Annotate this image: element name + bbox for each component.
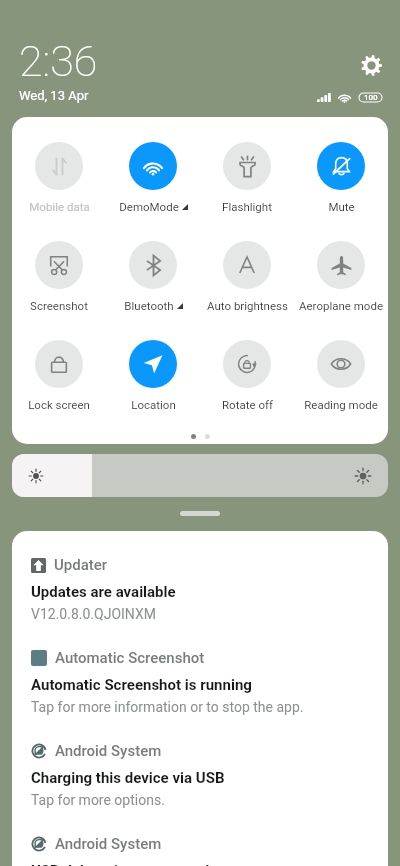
staticText: Updates are available	[31, 583, 176, 601]
button[interactable]: Aeroplane mode	[294, 241, 388, 312]
staticText: Aeroplane mode	[299, 299, 383, 312]
button[interactable]: Brightness	[12, 454, 388, 497]
button[interactable]: Bluetooth	[106, 241, 200, 312]
staticText: 100	[364, 93, 378, 102]
staticText: Auto brightness	[207, 299, 288, 312]
button[interactable]: Flashlight	[200, 142, 294, 213]
staticText: Android System	[55, 835, 162, 853]
staticText: Tap for more information or to stop the …	[31, 699, 304, 715]
button[interactable]: Settings	[357, 51, 386, 80]
staticText: Updater	[54, 556, 108, 574]
staticText: Wed, 13 Apr	[19, 88, 89, 103]
staticText: Location	[131, 398, 176, 411]
button[interactable]: Mobile data	[12, 142, 106, 213]
button[interactable]: Lock screen	[12, 340, 106, 411]
button[interactable]: Reading mode	[294, 340, 388, 411]
staticText: DemoMode	[119, 200, 179, 213]
staticText: Tap for more options.	[31, 792, 165, 808]
staticText: USB debugging connected	[31, 862, 210, 866]
staticText: Bluetooth	[124, 299, 174, 312]
button[interactable]: Automatic Screenshot	[31, 649, 371, 715]
staticText: Automatic Screenshot	[55, 649, 205, 667]
button[interactable]: Rotate off	[200, 340, 294, 411]
button[interactable]: Auto brightness	[200, 241, 294, 312]
button[interactable]: Updater	[31, 556, 371, 622]
staticText: Lock screen	[28, 398, 90, 411]
staticText: Charging this device via USB	[31, 769, 225, 787]
button[interactable]: Mute	[294, 142, 388, 213]
button[interactable]: Android System	[31, 835, 371, 866]
staticText: Automatic Screenshot is running	[31, 676, 252, 694]
button[interactable]: DemoMode	[106, 142, 200, 213]
staticText: Flashlight	[222, 200, 272, 213]
staticText: Reading mode	[304, 398, 378, 411]
staticText: Mobile data	[29, 200, 90, 213]
staticText: Rotate off	[222, 398, 273, 411]
staticText: Screenshot	[30, 299, 88, 312]
staticText: 2:36	[19, 36, 98, 86]
staticText: Android System	[55, 742, 162, 760]
button[interactable]: Android System	[31, 742, 371, 808]
button[interactable]: Screenshot	[12, 241, 106, 312]
button[interactable]: Location	[106, 340, 200, 411]
staticText: Mute	[328, 200, 355, 213]
staticText: V12.0.8.0.QJOINXM	[31, 606, 156, 622]
